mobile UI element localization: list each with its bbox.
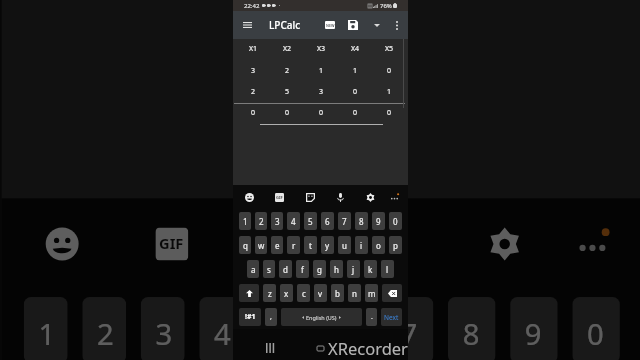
staticText: 0 xyxy=(587,312,605,352)
button[interactable]: Navigation menu xyxy=(237,15,257,35)
button[interactable]: 7 xyxy=(338,212,351,230)
staticText: 0 xyxy=(393,216,398,227)
button[interactable]: 1 xyxy=(239,212,251,230)
button[interactable]: i xyxy=(355,236,368,254)
button[interactable]: Stickers xyxy=(258,217,313,271)
button[interactable]: 2 xyxy=(255,212,267,230)
button[interactable]: Shift xyxy=(239,284,259,302)
button[interactable]: Keyboard settings xyxy=(477,217,532,271)
staticText: 6 xyxy=(338,312,357,352)
staticText: 0 xyxy=(353,87,358,97)
staticText: XRecorder xyxy=(328,337,408,359)
button[interactable]: 6 xyxy=(321,212,334,230)
button[interactable]: b xyxy=(331,284,344,302)
button[interactable]: 9 xyxy=(372,212,385,230)
button[interactable]: k xyxy=(364,260,377,278)
button[interactable]: 8 xyxy=(355,212,368,230)
staticText: r xyxy=(292,240,296,251)
button[interactable]: Recent apps xyxy=(262,340,278,356)
staticText: 2 xyxy=(97,312,115,352)
button[interactable]: Show more xyxy=(366,14,388,36)
staticText: w xyxy=(258,240,265,251)
button[interactable]: q xyxy=(239,236,251,254)
staticText: f xyxy=(301,264,304,275)
button[interactable]: 0 xyxy=(572,297,620,360)
button[interactable]: New problem xyxy=(319,14,341,36)
staticText: z xyxy=(268,288,272,299)
button[interactable]: More options xyxy=(388,16,406,34)
button[interactable]: Save xyxy=(342,14,364,36)
button[interactable]: e xyxy=(271,236,283,254)
button[interactable]: s xyxy=(263,260,275,278)
button[interactable]: x xyxy=(280,284,293,302)
button[interactable]: GIF xyxy=(144,217,199,271)
button[interactable]: Voice input xyxy=(333,190,348,205)
button[interactable]: m xyxy=(365,284,378,302)
button[interactable]: f xyxy=(296,260,309,278)
button[interactable]: y xyxy=(321,236,334,254)
staticText: 1 xyxy=(319,66,324,76)
button[interactable]: z xyxy=(263,284,276,302)
staticText: 1 xyxy=(243,216,248,227)
button[interactable]: !#1 xyxy=(239,308,261,326)
button[interactable]: Voice input xyxy=(367,217,422,271)
button[interactable]: o xyxy=(372,236,385,254)
button[interactable]: v xyxy=(314,284,327,302)
button[interactable]: j xyxy=(347,260,360,278)
button[interactable]: 7 xyxy=(386,297,433,360)
button[interactable]: u xyxy=(338,236,351,254)
staticText: 7 xyxy=(342,216,347,227)
button[interactable]: 9 xyxy=(510,297,558,360)
staticText: p xyxy=(393,240,398,251)
button[interactable]: 5 xyxy=(261,297,309,360)
button[interactable]: English (US) xyxy=(281,308,362,326)
staticText: b xyxy=(335,288,340,299)
button[interactable]: p xyxy=(389,236,402,254)
staticText: 2 xyxy=(259,216,264,227)
staticText: NEW xyxy=(326,23,335,28)
button[interactable]: 2 xyxy=(82,297,126,360)
button[interactable]: n xyxy=(348,284,361,302)
button[interactable]: 4 xyxy=(287,212,300,230)
staticText: a xyxy=(251,264,256,275)
button[interactable]: . xyxy=(366,308,377,326)
button[interactable]: GIF xyxy=(272,190,287,205)
button[interactable]: 0 xyxy=(389,212,402,230)
staticText: x xyxy=(284,288,289,299)
staticText: X2 xyxy=(283,44,292,54)
staticText: 5 xyxy=(285,87,290,97)
staticText: s xyxy=(267,264,271,275)
button[interactable]: 4 xyxy=(199,297,247,360)
button[interactable]: 8 xyxy=(448,297,495,360)
staticText: k xyxy=(368,264,373,275)
button[interactable]: 3 xyxy=(141,297,185,360)
button[interactable]: Emoji xyxy=(242,190,257,205)
button[interactable]: Backspace xyxy=(382,284,402,302)
button[interactable]: c xyxy=(297,284,310,302)
button[interactable]: , xyxy=(265,308,277,326)
button[interactable]: 1 xyxy=(24,297,68,360)
button[interactable]: Next xyxy=(381,308,402,326)
button[interactable]: Emoji xyxy=(35,217,90,271)
button[interactable]: More xyxy=(565,217,620,271)
button[interactable]: Keyboard settings xyxy=(363,190,378,205)
staticText: 0 xyxy=(319,108,324,118)
button[interactable]: 3 xyxy=(271,212,283,230)
button[interactable]: 5 xyxy=(304,212,317,230)
button[interactable]: r xyxy=(287,236,300,254)
button[interactable]: d xyxy=(279,260,292,278)
button[interactable]: Stickers xyxy=(303,190,318,205)
button[interactable]: a xyxy=(247,260,259,278)
button[interactable]: g xyxy=(313,260,326,278)
staticText: !#1 xyxy=(245,312,256,322)
button[interactable]: More xyxy=(387,190,402,205)
staticText: v xyxy=(318,288,323,299)
button[interactable]: h xyxy=(330,260,343,278)
button[interactable]: l xyxy=(381,260,394,278)
staticText: 9 xyxy=(525,312,543,352)
staticText: 0 xyxy=(387,66,392,76)
button[interactable]: 6 xyxy=(324,297,371,360)
button[interactable]: w xyxy=(255,236,267,254)
staticText: 8 xyxy=(359,216,364,227)
button[interactable]: t xyxy=(304,236,317,254)
